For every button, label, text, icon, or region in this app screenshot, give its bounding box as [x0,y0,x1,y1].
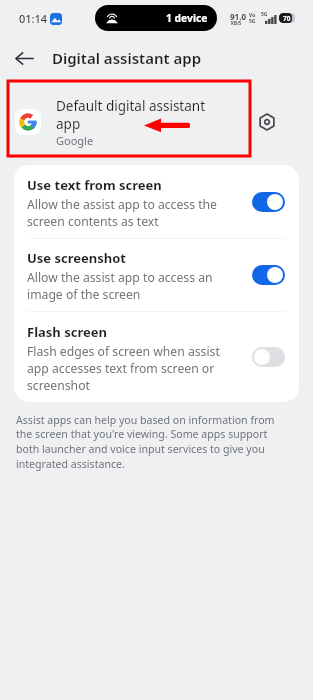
staticText: Assist apps can help you based on inform… [16,413,284,472]
staticText: Digital assistant app [52,48,202,68]
staticText: KB/S [231,20,242,26]
staticText: Vo [249,12,256,19]
staticText: Allow the assist app to access the scree… [27,196,217,230]
button[interactable]: Use screenshot [14,239,299,311]
staticText: 91.0 [230,11,246,22]
button[interactable]: Settings [245,100,289,144]
button[interactable]: Cast 1 device [95,5,217,31]
button[interactable]: Back [4,38,44,78]
staticText: 5G [249,18,256,25]
button[interactable]: Off [252,347,285,367]
button[interactable]: On [252,265,285,285]
staticText: Google [56,133,94,148]
button[interactable]: Flash screen [14,312,299,402]
staticText: 01:14 [19,11,48,26]
staticText: Use screenshot [27,249,126,267]
button[interactable]: Default digital assistant app [0,80,313,158]
staticText: Flash edges of screen when assist app ac… [27,343,220,394]
button[interactable]: Use text from screen [14,165,299,238]
staticText: Use text from screen [27,176,162,194]
staticText: 5G [261,11,268,18]
staticText: 70 [283,14,291,23]
button[interactable]: On [252,192,285,212]
staticText: Flash screen [27,323,107,341]
staticText: Default digital assistant app [56,97,212,133]
staticText: 1 device [166,11,208,25]
staticText: Allow the assist app to access an image … [27,269,213,303]
